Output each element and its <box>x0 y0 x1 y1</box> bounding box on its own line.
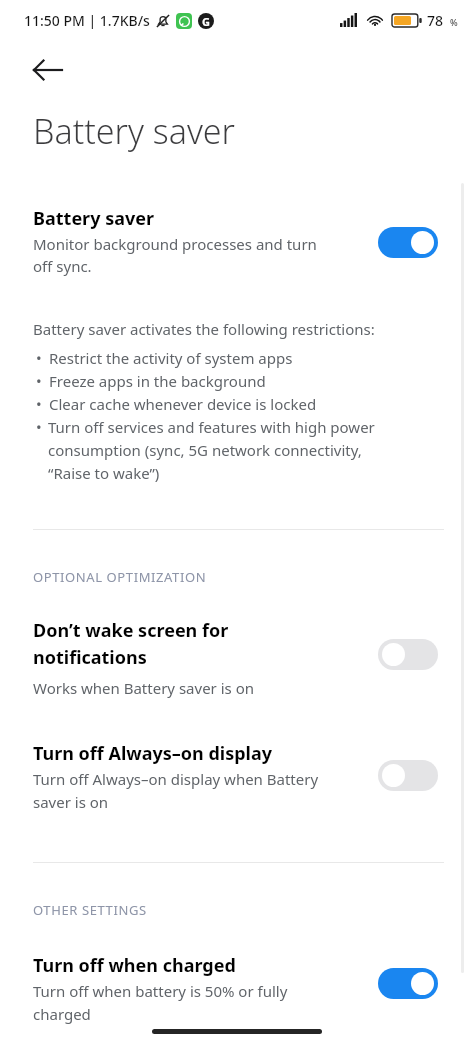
staticText: % <box>450 16 458 28</box>
staticText: 11:50 PM | 1.7KB/s <box>24 11 150 30</box>
staticText: Clear cache whenever device is locked <box>49 394 317 414</box>
staticText: G <box>202 14 210 29</box>
staticText: Battery saver <box>33 206 155 231</box>
staticText: OPTIONAL OPTIMIZATION <box>33 568 207 586</box>
button[interactable]: Turn off when charged <box>378 968 438 999</box>
button[interactable]: Don't wake screen for notifications <box>378 639 438 670</box>
button[interactable]: Back <box>20 48 76 92</box>
staticText: • <box>36 417 42 437</box>
staticText: Don’t wake screen for notifications <box>33 618 353 669</box>
staticText: Battery saver activates the following re… <box>33 319 375 339</box>
staticText: Turn off services and features with high… <box>48 417 448 483</box>
button[interactable]: Turn off Always-on display <box>378 760 438 791</box>
staticText: Turn off when battery is 50% or fully ch… <box>33 981 373 1024</box>
staticText: Freeze apps in the background <box>49 371 266 391</box>
staticText: 78 <box>427 11 444 30</box>
staticText: • <box>36 371 42 391</box>
staticText: Battery saver <box>33 108 235 154</box>
staticText: Turn off when charged <box>33 953 236 978</box>
staticText: • <box>36 394 42 414</box>
staticText: Restrict the activity of system apps <box>49 348 293 368</box>
staticText: • <box>36 348 42 368</box>
staticText: Monitor background processes and turn of… <box>33 234 363 277</box>
staticText: Works when Battery saver is on <box>33 678 254 698</box>
staticText: OTHER SETTINGS <box>33 901 147 919</box>
staticText: Turn off Always–on display when Battery … <box>33 769 373 812</box>
staticText: Turn off Always–on display <box>33 741 272 766</box>
button[interactable]: Battery saver <box>378 227 438 258</box>
